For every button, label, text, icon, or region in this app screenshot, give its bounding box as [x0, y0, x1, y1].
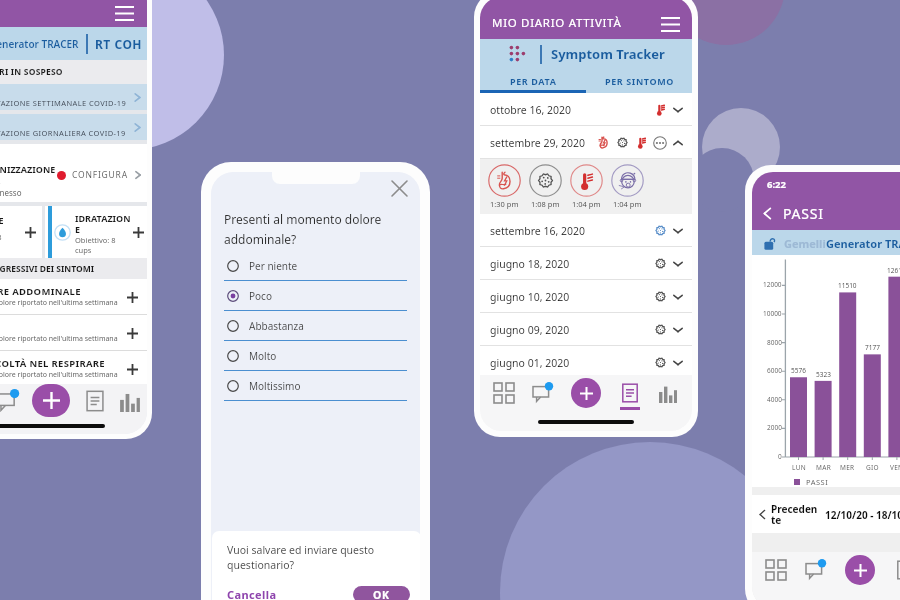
staticText: INDICATORI PROGRESSIVI DEI SINTOMI — [0, 263, 95, 275]
button[interactable]: giugno 09, 2020 — [480, 313, 692, 346]
button[interactable]: 02/11/2020 — [0, 114, 147, 140]
button[interactable]: Menu — [661, 18, 680, 31]
staticText: RT COH — [95, 36, 143, 52]
button[interactable]: Messages — [0, 390, 19, 412]
staticText: PER SINTOMO — [605, 75, 674, 87]
staticText: 1:30 pm — [490, 199, 519, 209]
button[interactable]: Poco — [224, 281, 407, 311]
staticText: 6000 — [767, 366, 782, 375]
staticText: settembre 29, 2020 — [490, 136, 586, 150]
staticText: Presenti al momento dolore addominale? — [224, 211, 407, 247]
staticText: LUN — [792, 463, 806, 472]
staticText: 1:04 pm — [613, 199, 642, 209]
button[interactable]: Dashboard — [494, 383, 514, 403]
staticText: 7177 — [865, 343, 880, 352]
button[interactable]: Diary — [84, 390, 106, 412]
button[interactable]: Cancella — [227, 585, 277, 600]
button[interactable]: Add — [845, 555, 875, 585]
staticText: giugno 10, 2020 — [490, 290, 570, 304]
button[interactable]: Menu — [115, 7, 134, 20]
staticText: 6:22 — [767, 178, 786, 191]
staticText: 0 — [778, 452, 782, 461]
button[interactable]: Abbastanza — [224, 311, 407, 341]
staticText: CONFIGURA — [72, 169, 128, 181]
staticText: 2000 — [767, 423, 782, 432]
button[interactable]: PER DATA — [480, 69, 586, 93]
button[interactable]: 1:30 pm — [484, 164, 525, 209]
button[interactable]: settembre 16, 2020 — [480, 214, 692, 247]
staticText: 5323 — [816, 370, 831, 379]
staticText: Moltissimo — [249, 379, 301, 393]
staticText: Abbastanza — [249, 319, 304, 333]
staticText: ALIMENTAZIONE — [0, 214, 4, 226]
button[interactable]: SINCRONIZZAZIONE SCHEDA — [0, 144, 147, 202]
button[interactable]: giugno 18, 2020 — [480, 247, 692, 280]
staticText: Symptom Tracker — [551, 45, 665, 63]
staticText: 8000 — [767, 338, 782, 347]
staticText: IDRATAZION E — [75, 212, 131, 235]
button[interactable]: 1:08 pm — [525, 164, 566, 209]
button[interactable]: settembre 29, 2020 — [480, 126, 692, 159]
button[interactable]: ottobre 16, 2020 — [480, 93, 692, 126]
staticText: SINCRONIZZAZIONE SCHEDA — [0, 163, 56, 187]
button[interactable]: Per niente — [224, 251, 407, 281]
button[interactable]: Diary — [895, 560, 900, 580]
staticText: PASSI — [783, 204, 824, 223]
button[interactable]: Messages — [806, 560, 826, 580]
button[interactable]: Charts — [119, 390, 141, 412]
button[interactable]: Diary — [620, 383, 640, 403]
button[interactable]: 1:04 pm — [566, 164, 607, 209]
staticText: 1:08 pm — [531, 199, 560, 209]
button[interactable]: DOLORE ADDOMINALE — [0, 279, 147, 315]
staticText: Nessun dolore riportato nell'ultima sett… — [0, 370, 118, 380]
button[interactable]: Dashboard — [766, 560, 786, 580]
staticText: 1:04 pm — [572, 199, 601, 209]
staticText: DOLORE ADDOMINALE — [0, 285, 81, 298]
button[interactable]: Precedente — [752, 495, 900, 533]
staticText: Generator TRACER — [0, 37, 79, 51]
staticText: ottobre 16, 2020 — [490, 103, 572, 117]
button[interactable]: giugno 10, 2020 — [480, 280, 692, 313]
button[interactable]: Add — [571, 378, 601, 408]
button[interactable]: giugno 01, 2020 — [480, 346, 692, 379]
staticText: GIO — [866, 463, 879, 472]
staticText: Per niente — [249, 259, 298, 273]
staticText: Obiettivo: 8 cups — [75, 235, 116, 255]
staticText: MAR — [816, 463, 831, 472]
staticText: Nessun dolore riportato nell'ultima sett… — [0, 298, 118, 308]
button[interactable]: Close — [392, 181, 407, 196]
staticText: giugno 01, 2020 — [490, 356, 570, 370]
button[interactable]: Messages — [533, 383, 553, 403]
staticText: QUESTIONARI IN SOSPESO — [0, 66, 63, 78]
staticText: Non connesso — [0, 187, 22, 198]
button[interactable]: IDRATAZION E — [45, 206, 147, 258]
staticText: AUTOVALUTAZIONE GIORNALIERA COVID-19 — [0, 128, 126, 138]
staticText: VEN — [890, 463, 900, 472]
staticText: MIO DIARIO ATTIVITÀ — [492, 15, 622, 31]
staticText: Generator TRACER — [826, 236, 900, 251]
button[interactable]: 02/11/2020 — [0, 84, 147, 110]
button[interactable]: Nessun dolore riportato nell'ultima sett… — [0, 315, 147, 351]
staticText: Obiettivo: 8 — [0, 232, 2, 242]
button[interactable]: Molto — [224, 341, 407, 371]
button[interactable]: PER SINTOMO — [586, 69, 692, 93]
button[interactable]: Moltissimo — [224, 371, 407, 401]
button[interactable]: ALIMENTAZIONE — [0, 206, 42, 258]
staticText: 12610 — [887, 266, 900, 275]
staticText: Cancella — [227, 587, 277, 600]
staticText: Nessun dolore riportato nell'ultima sett… — [0, 334, 118, 344]
staticText: giugno 09, 2020 — [490, 323, 570, 337]
button[interactable]: Back — [761, 207, 774, 220]
button[interactable]: Charts — [658, 383, 678, 403]
staticText: Precedente — [771, 502, 819, 527]
staticText: PASSI — [806, 477, 829, 487]
staticText: PER DATA — [510, 75, 557, 87]
staticText: Poco — [249, 289, 272, 303]
button[interactable]: 1:04 pm — [607, 164, 648, 209]
button[interactable]: DIFFICOLTÀ NEL RESPIRARE — [0, 351, 147, 387]
staticText: 5576 — [791, 366, 806, 375]
staticText: giugno 18, 2020 — [490, 257, 570, 271]
staticText: 4000 — [767, 395, 782, 404]
button[interactable]: Add — [32, 384, 70, 417]
button[interactable]: OK — [353, 586, 410, 600]
